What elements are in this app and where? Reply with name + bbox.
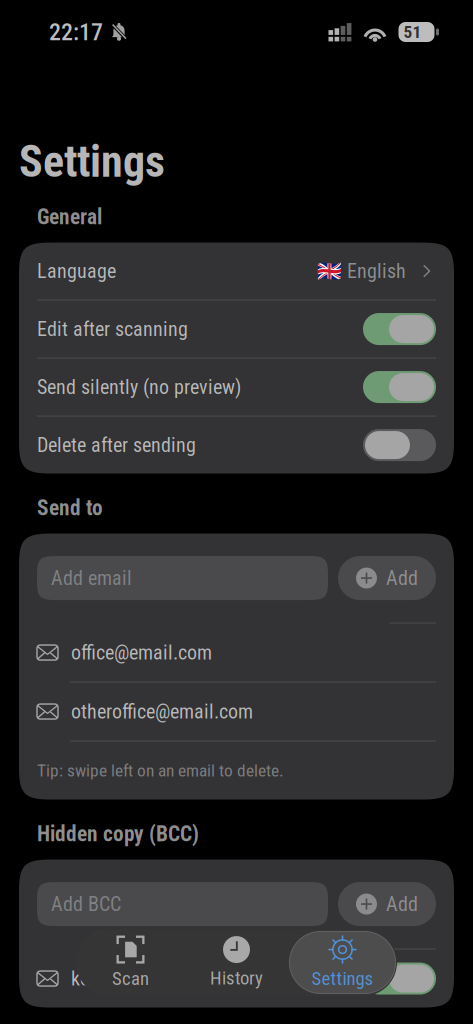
staticText: Send to	[37, 496, 103, 521]
staticText: Add BCC	[51, 892, 121, 916]
button[interactable]: Settings	[289, 931, 395, 993]
staticText: 22:17	[49, 18, 103, 46]
button[interactable]: Edit after scanning	[19, 301, 454, 358]
staticText: Edit after scanning	[37, 317, 188, 341]
button[interactable]: Language	[19, 243, 454, 300]
staticText: Add	[386, 892, 418, 916]
staticText: History	[210, 967, 263, 989]
button[interactable]: History	[183, 931, 289, 993]
staticText: 🇬🇧	[317, 259, 342, 283]
staticText: Add email	[51, 566, 132, 590]
staticText: Settings	[19, 136, 165, 188]
button[interactable]: Scan	[77, 931, 183, 993]
button[interactable]: otheroffice@email.com	[19, 683, 454, 741]
staticText: Language	[37, 259, 116, 283]
button[interactable]: Send silently (no preview)	[19, 359, 454, 416]
staticText: Send silently (no preview)	[37, 375, 241, 399]
staticText: Hidden copy (BCC)	[37, 822, 199, 847]
staticText: Scan	[112, 968, 149, 989]
staticText: Add	[386, 566, 418, 590]
staticText: office@email.com	[71, 641, 212, 664]
button[interactable]: Add	[338, 882, 436, 926]
staticText: Settings	[311, 968, 373, 989]
staticText: kontakt@email.com	[71, 967, 229, 990]
staticText: English	[342, 259, 406, 283]
button[interactable]: office@email.com	[19, 624, 454, 682]
staticText: General	[37, 205, 102, 230]
staticText: 51	[403, 22, 421, 42]
button[interactable]: Delete after sending	[19, 417, 454, 474]
button[interactable]: Add	[338, 556, 436, 600]
staticText: Tip: swipe left on an email to delete.	[37, 760, 284, 781]
staticText: otheroffice@email.com	[71, 700, 253, 723]
staticText: Delete after sending	[37, 433, 196, 457]
